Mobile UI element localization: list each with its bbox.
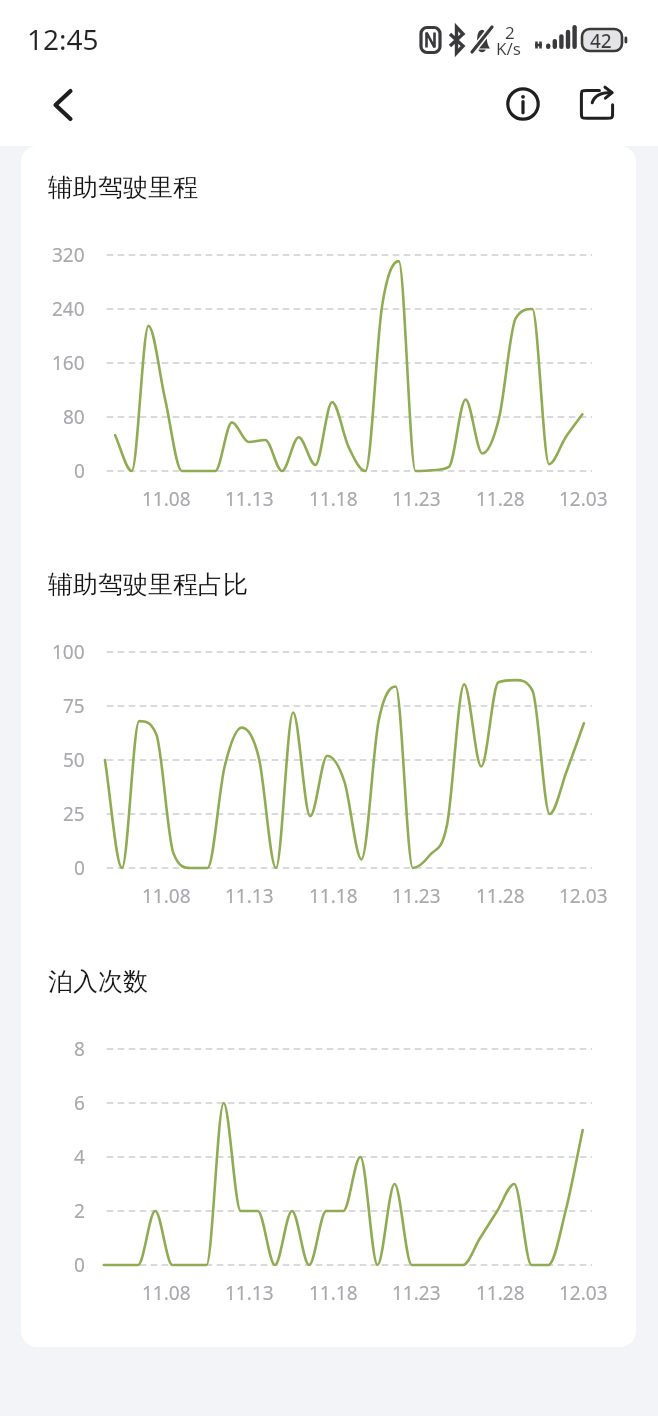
staticText: 11.28 xyxy=(476,486,525,512)
staticText: 12.03 xyxy=(559,486,608,512)
staticText: 80 xyxy=(63,404,85,430)
staticText: 11.18 xyxy=(309,883,358,909)
staticText: 11.08 xyxy=(142,1280,191,1306)
staticText: 42 xyxy=(590,28,612,54)
staticText: 11.23 xyxy=(392,1280,441,1306)
staticText: 2 xyxy=(505,21,515,44)
staticText: 12.03 xyxy=(559,883,608,909)
staticText: 12:45 xyxy=(27,20,99,58)
staticText: 11.13 xyxy=(225,1280,274,1306)
staticText: 11.23 xyxy=(392,486,441,512)
staticText: 320 xyxy=(52,242,85,268)
staticText: 11.18 xyxy=(309,486,358,512)
staticText: 11.28 xyxy=(476,883,525,909)
staticText: 11.13 xyxy=(225,883,274,909)
staticText: K/s xyxy=(496,37,521,60)
staticText: 11.08 xyxy=(142,883,191,909)
staticText: 50 xyxy=(63,747,85,773)
staticText: 11.23 xyxy=(392,883,441,909)
button[interactable]: Info xyxy=(497,78,549,130)
staticText: 泊入次数 xyxy=(48,966,148,997)
button[interactable]: Back xyxy=(37,79,89,131)
staticText: 0 xyxy=(74,458,85,484)
staticText: 11.13 xyxy=(225,486,274,512)
staticText: 8 xyxy=(74,1036,85,1062)
staticText: 11.18 xyxy=(309,1280,358,1306)
staticText: 160 xyxy=(52,350,85,376)
staticText: 0 xyxy=(74,855,85,881)
staticText: 6 xyxy=(74,1090,85,1116)
button[interactable]: Share xyxy=(571,78,623,130)
staticText: 4 xyxy=(74,1144,85,1170)
staticText: 100 xyxy=(52,639,85,665)
staticText: 11.08 xyxy=(142,486,191,512)
staticText: 75 xyxy=(63,693,85,719)
staticText: 0 xyxy=(74,1252,85,1278)
staticText: 辅助驾驶里程占比 xyxy=(48,569,248,600)
staticText: 11.28 xyxy=(476,1280,525,1306)
staticText: 240 xyxy=(52,296,85,322)
staticText: 2 xyxy=(74,1198,85,1224)
staticText: 25 xyxy=(63,801,85,827)
staticText: 12.03 xyxy=(559,1280,608,1306)
staticText: 辅助驾驶里程 xyxy=(48,172,198,203)
